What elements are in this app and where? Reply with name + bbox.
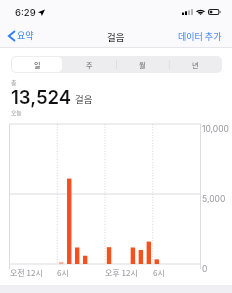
- staticText: 6시: [57, 267, 69, 279]
- staticText: 13,524: [11, 86, 72, 108]
- button[interactable]: 데이터 추가: [170, 27, 232, 46]
- staticText: 오늘: [11, 108, 22, 116]
- staticText: 요약: [17, 29, 34, 42]
- staticText: 걸음: [107, 30, 125, 44]
- staticText: 6:29: [15, 7, 36, 18]
- staticText: 주: [86, 60, 93, 70]
- button[interactable]: 년: [169, 56, 222, 73]
- staticText: 10,000: [202, 124, 229, 134]
- staticText: 0: [202, 264, 208, 274]
- staticText: 6시: [153, 267, 165, 279]
- button[interactable]: 월: [116, 56, 169, 73]
- staticText: 월: [139, 60, 146, 70]
- button[interactable]: 요약: [0, 26, 40, 45]
- staticText: 년: [192, 60, 199, 70]
- staticText: 걸음: [75, 92, 93, 106]
- staticText: 총: [11, 78, 17, 87]
- button[interactable]: 일: [11, 56, 63, 73]
- staticText: 오전 12시: [10, 267, 43, 279]
- staticText: 오후 12시: [105, 267, 138, 279]
- staticText: 5,000: [202, 194, 226, 204]
- button[interactable]: 주: [63, 56, 116, 73]
- staticText: 일: [34, 60, 41, 70]
